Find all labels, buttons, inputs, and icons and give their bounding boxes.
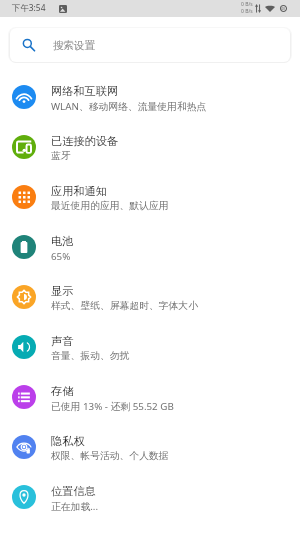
staticText: WLAN、移动网络、流量使用和热点 — [51, 100, 207, 113]
staticText: 48 — [281, 6, 286, 11]
staticText: 权限、帐号活动、个人数据 — [51, 450, 169, 462]
staticText: 0 B/s — [241, 8, 253, 15]
button[interactable]: 隐私权 — [0, 422, 300, 472]
staticText: 音量、振动、勿扰 — [51, 350, 130, 362]
staticText: 搜索设置 — [53, 39, 95, 52]
staticText: 最近使用的应用、默认应用 — [51, 200, 169, 212]
button[interactable]: 网络和互联网 — [0, 72, 300, 122]
staticText: 显示 — [51, 284, 74, 298]
staticText: 应用和通知 — [51, 184, 107, 198]
other: Search — [23, 39, 35, 51]
button[interactable]: 位置信息 — [0, 472, 300, 522]
button[interactable]: 已连接的设备 — [0, 122, 300, 172]
staticText: 隐私权 — [51, 434, 85, 448]
button[interactable]: 声音 — [0, 322, 300, 372]
button[interactable]: 应用和通知 — [0, 172, 300, 222]
staticText: 网络和互联网 — [51, 84, 119, 98]
button[interactable]: 显示 — [0, 272, 300, 322]
staticText: 正在加载... — [51, 500, 99, 513]
staticText: 电池 — [51, 234, 74, 248]
button[interactable]: Search — [10, 28, 290, 62]
staticText: 已使用 13% - 还剩 55.52 GB — [51, 400, 174, 413]
staticText: 已连接的设备 — [51, 134, 119, 148]
button[interactable]: 电池 — [0, 222, 300, 272]
staticText: 存储 — [51, 384, 74, 398]
button[interactable]: 存储 — [0, 372, 300, 422]
staticText: 样式、壁纸、屏幕超时、字体大小 — [51, 300, 198, 312]
staticText: 0 B/s — [241, 1, 253, 8]
staticText: 声音 — [51, 334, 74, 348]
staticText: 下午3:54 — [12, 2, 46, 13]
staticText: 位置信息 — [51, 484, 96, 498]
staticText: 蓝牙 — [51, 150, 71, 162]
staticText: 65% — [51, 250, 71, 263]
